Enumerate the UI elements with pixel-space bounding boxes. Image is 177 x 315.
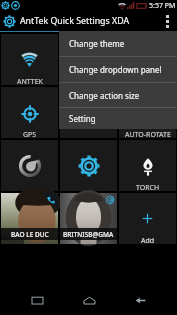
button[interactable] [119,34,176,85]
button[interactable] [1,140,58,191]
button[interactable]: GPS [1,87,58,138]
staticText: GPS [23,130,37,140]
button[interactable]: Home [74,285,104,315]
button[interactable]: BAO LE DUC [1,193,58,244]
button[interactable] [60,140,117,191]
staticText: Change action size [69,90,140,101]
button[interactable]: Change theme [59,31,177,56]
staticText: Add [141,236,155,246]
staticText: AntTek Quick Settings XDA [20,15,130,27]
button[interactable]: Setting [59,108,177,129]
staticText: TORCH [136,183,160,193]
button[interactable]: TORCH [119,140,176,191]
button[interactable]: Change action size [59,83,177,107]
button[interactable]: Recent apps [22,285,52,315]
staticText: Setting [69,113,96,124]
staticText: AUTO-ROTATE [125,130,171,140]
staticText: Change dropdown panel [69,64,162,75]
staticText: 5:57 PM [149,1,176,11]
button[interactable]: Change dropdown panel [59,57,177,82]
button[interactable] [60,34,117,85]
staticText: BRITNISB@GMA [63,230,114,239]
button[interactable] [60,87,117,138]
button[interactable]: More options [157,11,177,31]
staticText: ANTTEK [17,77,43,87]
staticText: Change theme [69,38,125,49]
button[interactable]: Add [119,193,176,244]
button[interactable]: AUTO-ROTATE [119,87,176,138]
button[interactable]: BRITNISB@GMA [60,193,117,244]
button[interactable]: Back [125,285,155,315]
button[interactable]: ANTTEK [1,34,58,85]
staticText: BAO LE DUC [11,230,49,239]
